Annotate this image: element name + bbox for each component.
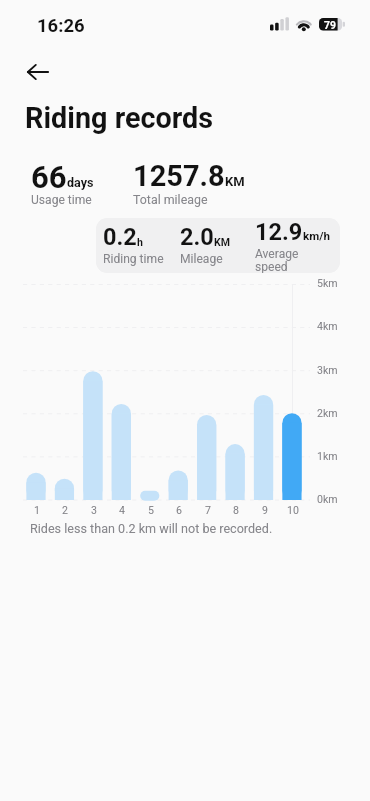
staticText: KM (225, 174, 245, 189)
staticText: 2.0 (180, 223, 214, 251)
staticText: 0km (317, 493, 338, 505)
staticText: 10 (287, 504, 299, 516)
staticText: 5 (148, 504, 154, 516)
staticText: 3 (91, 504, 97, 516)
staticText: 2km (317, 407, 338, 419)
staticText: 1km (317, 450, 338, 462)
staticText: Mileage (180, 252, 223, 266)
other: Wi-Fi (295, 17, 314, 32)
staticText: 6 (176, 504, 182, 516)
button[interactable]: 0.2 (96, 218, 340, 273)
staticText: 16:26 (37, 15, 85, 37)
staticText: 0.2 (103, 223, 137, 251)
staticText: Average speed (255, 247, 299, 273)
staticText: 4 (119, 504, 125, 516)
staticText: 1 (34, 504, 40, 516)
staticText: Total mileage (133, 192, 208, 207)
staticText: h (137, 236, 143, 248)
staticText: KM (214, 236, 231, 248)
staticText: Usage time (31, 193, 92, 207)
staticText: 12.9 (255, 218, 303, 246)
staticText: 79 (324, 19, 336, 31)
staticText: 5km (317, 277, 338, 289)
staticText: days (67, 175, 94, 190)
staticText: 4km (317, 320, 338, 332)
staticText: 66 (31, 159, 67, 195)
staticText: Rides less than 0.2 km will not be recor… (30, 521, 273, 536)
staticText: 3km (317, 364, 338, 376)
staticText: 8 (233, 504, 239, 516)
staticText: Riding records (25, 101, 214, 135)
staticText: 2 (62, 504, 68, 516)
staticText: km/h (303, 229, 331, 243)
other: Cellular signal (270, 16, 289, 31)
staticText: Riding time (103, 252, 164, 266)
staticText: 1257.8 (133, 159, 225, 193)
staticText: 7 (205, 504, 211, 516)
button[interactable]: Back (20, 54, 56, 90)
staticText: 9 (262, 504, 268, 516)
